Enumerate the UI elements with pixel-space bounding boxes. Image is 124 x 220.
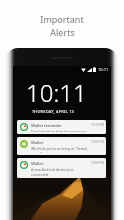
button[interactable]: Wallet	[17, 158, 106, 178]
staticText: Wallet reminder	[31, 123, 62, 128]
staticText: Wallet	[31, 161, 43, 166]
staticText: THURSDAY, APRIL 13	[26, 109, 80, 114]
staticText: Wallet	[31, 140, 43, 145]
staticText: 10:10 PM	[91, 123, 104, 127]
button[interactable]: Wallet reminder	[17, 120, 106, 134]
staticText: Alerts	[50, 26, 75, 38]
staticText: We think you're arriving at "Verbal, aga…	[31, 146, 90, 153]
staticText: 10:11	[26, 76, 87, 109]
staticText: 10:11	[98, 67, 109, 72]
button[interactable]: Wallet	[17, 137, 106, 155]
staticText: Don't forget to board your passes	[31, 129, 87, 132]
staticText: 10:00 PM	[91, 161, 104, 165]
staticText: A new Android device just connected to y…	[31, 167, 90, 176]
staticText: 10:05 PM	[91, 140, 104, 144]
staticText: Important	[40, 13, 84, 25]
